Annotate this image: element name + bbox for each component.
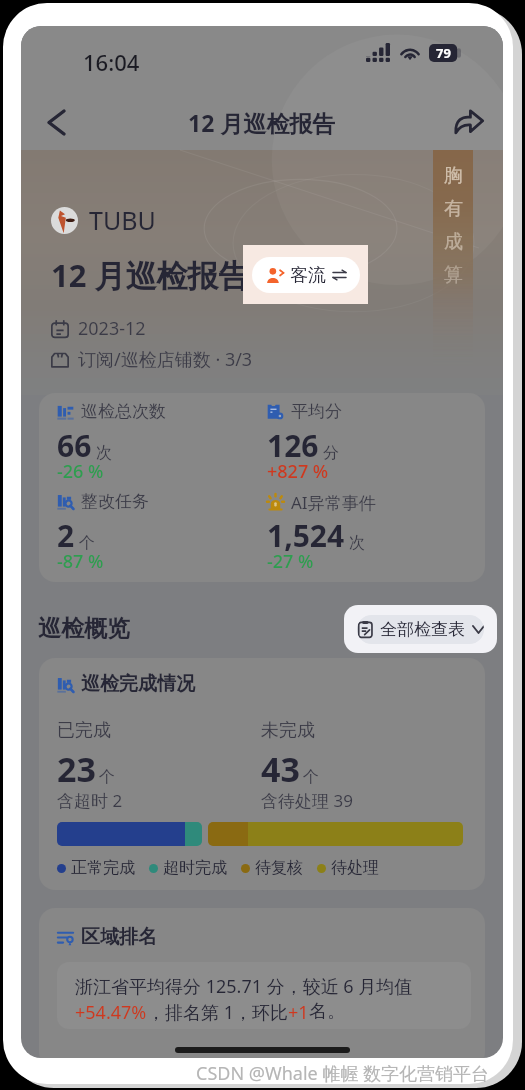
- staticText: 名。: [309, 1000, 345, 1023]
- staticText: 未完成: [261, 719, 315, 742]
- staticText: 整改任务: [81, 491, 149, 512]
- button[interactable]: 客流: [243, 245, 368, 304]
- staticText: 巡检总次数: [81, 401, 166, 422]
- staticText: 待复核: [255, 858, 303, 878]
- button[interactable]: Share: [446, 99, 492, 145]
- staticText: 66: [57, 425, 92, 466]
- staticText: 12 月巡检报告: [188, 107, 336, 138]
- staticText: 浙江省平均得分 125.71 分，较近 6 月均值: [75, 974, 413, 999]
- staticText: +1: [288, 1000, 309, 1025]
- staticText: 有: [444, 197, 463, 221]
- staticText: 平均分: [291, 401, 342, 422]
- staticText: 正常完成: [71, 858, 135, 878]
- staticText: 个: [79, 533, 95, 553]
- staticText: 79: [436, 44, 451, 62]
- staticText: 次: [349, 533, 365, 553]
- staticText: -27 %: [267, 549, 314, 574]
- staticText: 全部检查表: [380, 619, 465, 640]
- staticText: 2: [57, 515, 75, 556]
- staticText: 分: [323, 443, 339, 463]
- staticText: 订阅/巡检店铺数 · 3/3: [78, 347, 253, 372]
- staticText: TUBU: [89, 203, 156, 237]
- staticText: -87 %: [57, 549, 104, 574]
- staticText: 算: [444, 263, 463, 287]
- staticText: +827 %: [267, 459, 329, 484]
- button[interactable]: 全部检查表: [344, 605, 497, 653]
- staticText: 126: [267, 425, 319, 466]
- staticText: +54.47%: [75, 1000, 147, 1025]
- staticText: AI异常事件: [291, 491, 376, 514]
- staticText: 43: [261, 746, 300, 792]
- button[interactable]: Back: [33, 99, 79, 145]
- staticText: 待处理: [331, 858, 379, 878]
- staticText: 1,524: [267, 515, 345, 556]
- staticText: ，排名第 1，环比: [147, 1000, 288, 1025]
- staticText: 16:04: [83, 47, 140, 77]
- staticText: 2023-12: [78, 316, 146, 341]
- staticText: 区域排名: [81, 925, 157, 949]
- staticText: 成: [444, 230, 463, 254]
- staticText: 23: [57, 746, 96, 792]
- staticText: -26 %: [57, 459, 104, 484]
- staticText: 已完成: [57, 719, 111, 742]
- staticText: 12 月巡检报告: [51, 254, 250, 296]
- staticText: 含待处理 39: [261, 789, 353, 812]
- staticText: 个: [303, 767, 319, 787]
- staticText: CSDN @Whale 帷幄 数字化营销平台: [196, 1061, 490, 1086]
- staticText: 胸: [444, 164, 463, 188]
- staticText: 巡检完成情况: [81, 672, 195, 696]
- staticText: 客流: [290, 264, 326, 287]
- staticText: 超时完成: [163, 858, 227, 878]
- staticText: 个: [99, 767, 115, 787]
- staticText: 含超时 2: [57, 789, 123, 812]
- staticText: 次: [96, 443, 112, 463]
- staticText: 巡检概览: [38, 614, 130, 643]
